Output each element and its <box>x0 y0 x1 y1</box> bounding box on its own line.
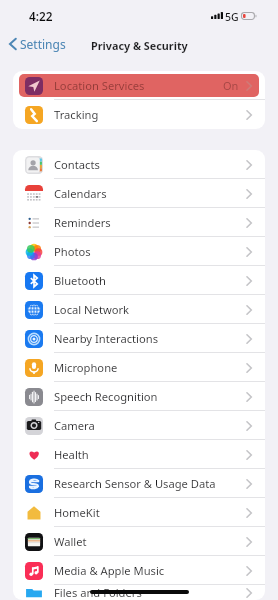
staticText: Research Sensor & Usage Data <box>54 476 216 491</box>
other: Microphone <box>25 359 43 377</box>
other: Camera <box>25 417 43 435</box>
other: Contacts <box>25 156 43 174</box>
other: Health <box>25 446 43 464</box>
other: Wallet <box>25 533 43 551</box>
staticText: Contacts <box>54 157 100 172</box>
button[interactable]: Bluetooth <box>13 266 265 295</box>
other: Speech Recognition <box>25 388 43 406</box>
button[interactable]: Files <box>13 585 265 600</box>
button[interactable]: Microphone <box>13 353 265 382</box>
button[interactable]: Calendars <box>13 179 265 208</box>
button[interactable]: Media <box>13 556 265 585</box>
other: Local Network <box>25 301 43 319</box>
staticText: Reminders <box>54 215 111 230</box>
staticText: Wallet <box>54 534 87 549</box>
button[interactable]: Wallet <box>13 527 265 556</box>
other: HomeKit <box>25 504 43 522</box>
other: Bluetooth <box>25 272 43 290</box>
staticText: Local Network <box>54 302 130 317</box>
button[interactable]: Speech Recognition <box>13 382 265 411</box>
other: Media <box>25 562 43 580</box>
staticText: Location Services <box>54 78 145 93</box>
staticText: Media & Apple Music <box>54 563 165 578</box>
staticText: 4:22 <box>29 8 53 24</box>
button[interactable]: Photos <box>13 237 265 266</box>
staticText: On <box>223 78 239 93</box>
staticText: Files and Folders <box>54 585 142 600</box>
button[interactable]: Contacts <box>13 150 265 179</box>
other: Nearby Interactions <box>25 330 43 348</box>
other: Files <box>25 585 43 600</box>
other: Research <box>25 475 43 493</box>
other: Photos <box>25 243 43 261</box>
button[interactable]: Health <box>13 440 265 469</box>
button[interactable]: Camera <box>13 411 265 440</box>
staticText: HomeKit <box>54 505 100 520</box>
staticText: Tracking <box>54 107 99 122</box>
staticText: Microphone <box>54 360 118 375</box>
button[interactable]: Local Network <box>13 295 265 324</box>
other: Reminders <box>25 214 43 232</box>
other: Calendars <box>25 185 43 203</box>
staticText: Bluetooth <box>54 273 106 288</box>
staticText: Health <box>54 447 89 462</box>
staticText: Privacy & Security <box>91 38 188 53</box>
staticText: Speech Recognition <box>54 389 158 404</box>
button[interactable]: Tracking <box>13 100 265 129</box>
button[interactable]: HomeKit <box>13 498 265 527</box>
button[interactable]: Reminders <box>13 208 265 237</box>
staticText: Settings <box>20 36 66 52</box>
staticText: Nearby Interactions <box>54 331 159 346</box>
staticText: Camera <box>54 418 95 433</box>
button[interactable]: Settings <box>9 31 66 57</box>
staticText: 5G <box>225 10 239 24</box>
staticText: Photos <box>54 244 91 259</box>
staticText: Calendars <box>54 186 107 201</box>
button[interactable]: Location Services <box>13 71 265 100</box>
button[interactable]: Research <box>13 469 265 498</box>
button[interactable]: Nearby Interactions <box>13 324 265 353</box>
